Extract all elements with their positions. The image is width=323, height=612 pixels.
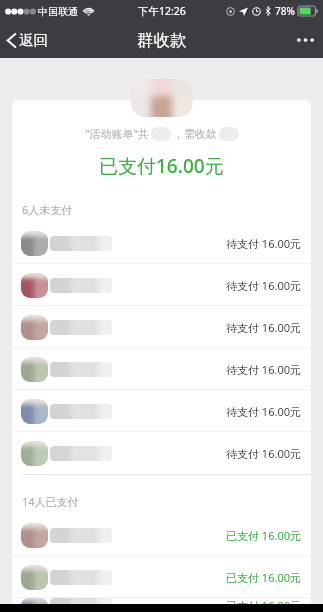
button[interactable]: 待支付 16.00元 — [12, 222, 311, 264]
button[interactable]: 待支付 16.00元 — [12, 432, 311, 474]
button[interactable]: 已支付 16.00元 — [12, 556, 311, 598]
staticText: "活动账单"共 — [85, 126, 149, 141]
button[interactable]: 待支付 16.00元 — [12, 390, 311, 432]
button[interactable]: 待支付 16.00元 — [12, 306, 311, 348]
staticText: 78% — [275, 4, 295, 18]
staticText: 已支付 16.00元 — [226, 570, 301, 585]
staticText: 待支付 16.00元 — [226, 362, 301, 377]
staticText: 待支付 16.00元 — [226, 404, 301, 419]
staticText: 6人未支付 — [22, 202, 73, 217]
button[interactable]: 待支付 16.00元 — [12, 264, 311, 306]
button[interactable]: 已支付 16.00元 — [12, 598, 311, 612]
staticText: 待支付 16.00元 — [226, 278, 301, 293]
staticText: 已支付16.00元 — [99, 153, 224, 179]
staticText: 下午12:26 — [138, 4, 186, 18]
button[interactable]: More options — [288, 22, 323, 58]
staticText: 已支付 16.00元 — [226, 528, 301, 543]
button[interactable]: 待支付 16.00元 — [12, 348, 311, 390]
staticText: 14人已支付 — [22, 494, 79, 509]
staticText: 已支付 16.00元 — [226, 598, 301, 612]
staticText: 待支付 16.00元 — [226, 236, 301, 251]
button[interactable]: 返回 — [0, 22, 60, 58]
staticText: 群收款 — [137, 30, 187, 51]
staticText: 待支付 16.00元 — [226, 320, 301, 335]
staticText: 待支付 16.00元 — [226, 446, 301, 461]
button[interactable]: 已支付 16.00元 — [12, 514, 311, 556]
staticText: 中国联通 — [38, 5, 78, 18]
staticText: 返回 — [19, 31, 48, 49]
staticText: ，需收款 — [173, 127, 217, 141]
